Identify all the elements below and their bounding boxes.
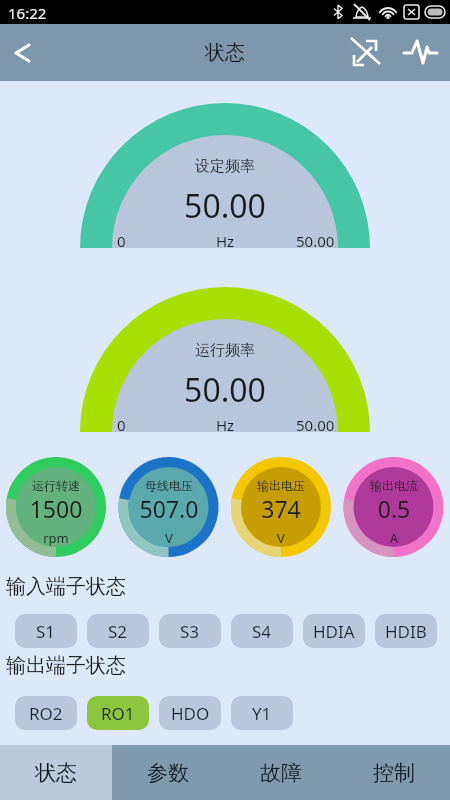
staticText: RO2	[29, 702, 63, 725]
staticText: S2	[108, 620, 128, 643]
staticText: 0	[117, 415, 126, 435]
staticText: S1	[36, 620, 56, 643]
button[interactable]: RO2	[15, 696, 77, 730]
button[interactable]: S4	[231, 614, 293, 648]
staticText: 设定频率	[0, 157, 450, 176]
staticText: 控制	[373, 760, 415, 786]
staticText: 母线电压	[119, 478, 219, 493]
staticText: RO1	[101, 702, 135, 725]
staticText: 50.00	[296, 415, 335, 435]
button[interactable]: RO1	[87, 696, 149, 730]
staticText: S3	[180, 620, 200, 643]
staticText: 输出电压	[231, 478, 331, 493]
staticText: Hz	[0, 231, 450, 251]
button[interactable]: HDO	[159, 696, 221, 730]
staticText: Y1	[252, 702, 272, 725]
button[interactable]: S1	[15, 614, 77, 648]
button[interactable]: 故障	[224, 745, 337, 800]
button[interactable]	[344, 31, 388, 75]
staticText: 50.00	[0, 184, 450, 228]
button[interactable]	[0, 29, 48, 77]
button[interactable]: 输出电压	[231, 457, 331, 557]
staticText: 0	[117, 231, 126, 251]
staticText: HDIB	[385, 620, 427, 643]
staticText: 运行频率	[0, 341, 450, 360]
staticText: 状态	[35, 760, 77, 786]
staticText: HDIA	[313, 620, 355, 643]
button[interactable]: 运行转速	[6, 457, 106, 557]
staticText: 1500	[6, 493, 106, 524]
staticText: V	[231, 529, 331, 547]
button[interactable]: 参数	[112, 745, 224, 800]
staticText: HDO	[171, 702, 210, 725]
button[interactable]: HDIB	[375, 614, 437, 648]
button[interactable]: 输出电流	[344, 457, 444, 557]
staticText: 故障	[260, 760, 302, 786]
button[interactable]: 控制	[337, 745, 450, 800]
button[interactable]: 母线电压	[119, 457, 219, 557]
staticText: 50.00	[296, 231, 335, 251]
staticText: S4	[252, 620, 272, 643]
button[interactable]: HDIA	[303, 614, 365, 648]
staticText: 507.0	[119, 493, 219, 524]
staticText: 状态	[205, 40, 245, 65]
staticText: 输入端子状态	[6, 574, 126, 599]
staticText: 50.00	[0, 368, 450, 412]
staticText: 运行转速	[6, 478, 106, 493]
staticText: 输出端子状态	[6, 653, 126, 678]
staticText: A	[344, 529, 444, 547]
staticText: 0.5	[344, 493, 444, 524]
staticText: 374	[231, 493, 331, 524]
staticText: 16:22	[8, 3, 47, 23]
button[interactable]: S2	[87, 614, 149, 648]
staticText: 参数	[147, 760, 189, 786]
staticText: Hz	[0, 415, 450, 435]
button[interactable]: S3	[159, 614, 221, 648]
button[interactable]: Y1	[231, 696, 293, 730]
button[interactable]	[400, 31, 444, 75]
staticText: rpm	[6, 529, 106, 547]
staticText: 输出电流	[344, 478, 444, 493]
button[interactable]: 状态	[0, 745, 112, 800]
staticText: V	[119, 529, 219, 547]
